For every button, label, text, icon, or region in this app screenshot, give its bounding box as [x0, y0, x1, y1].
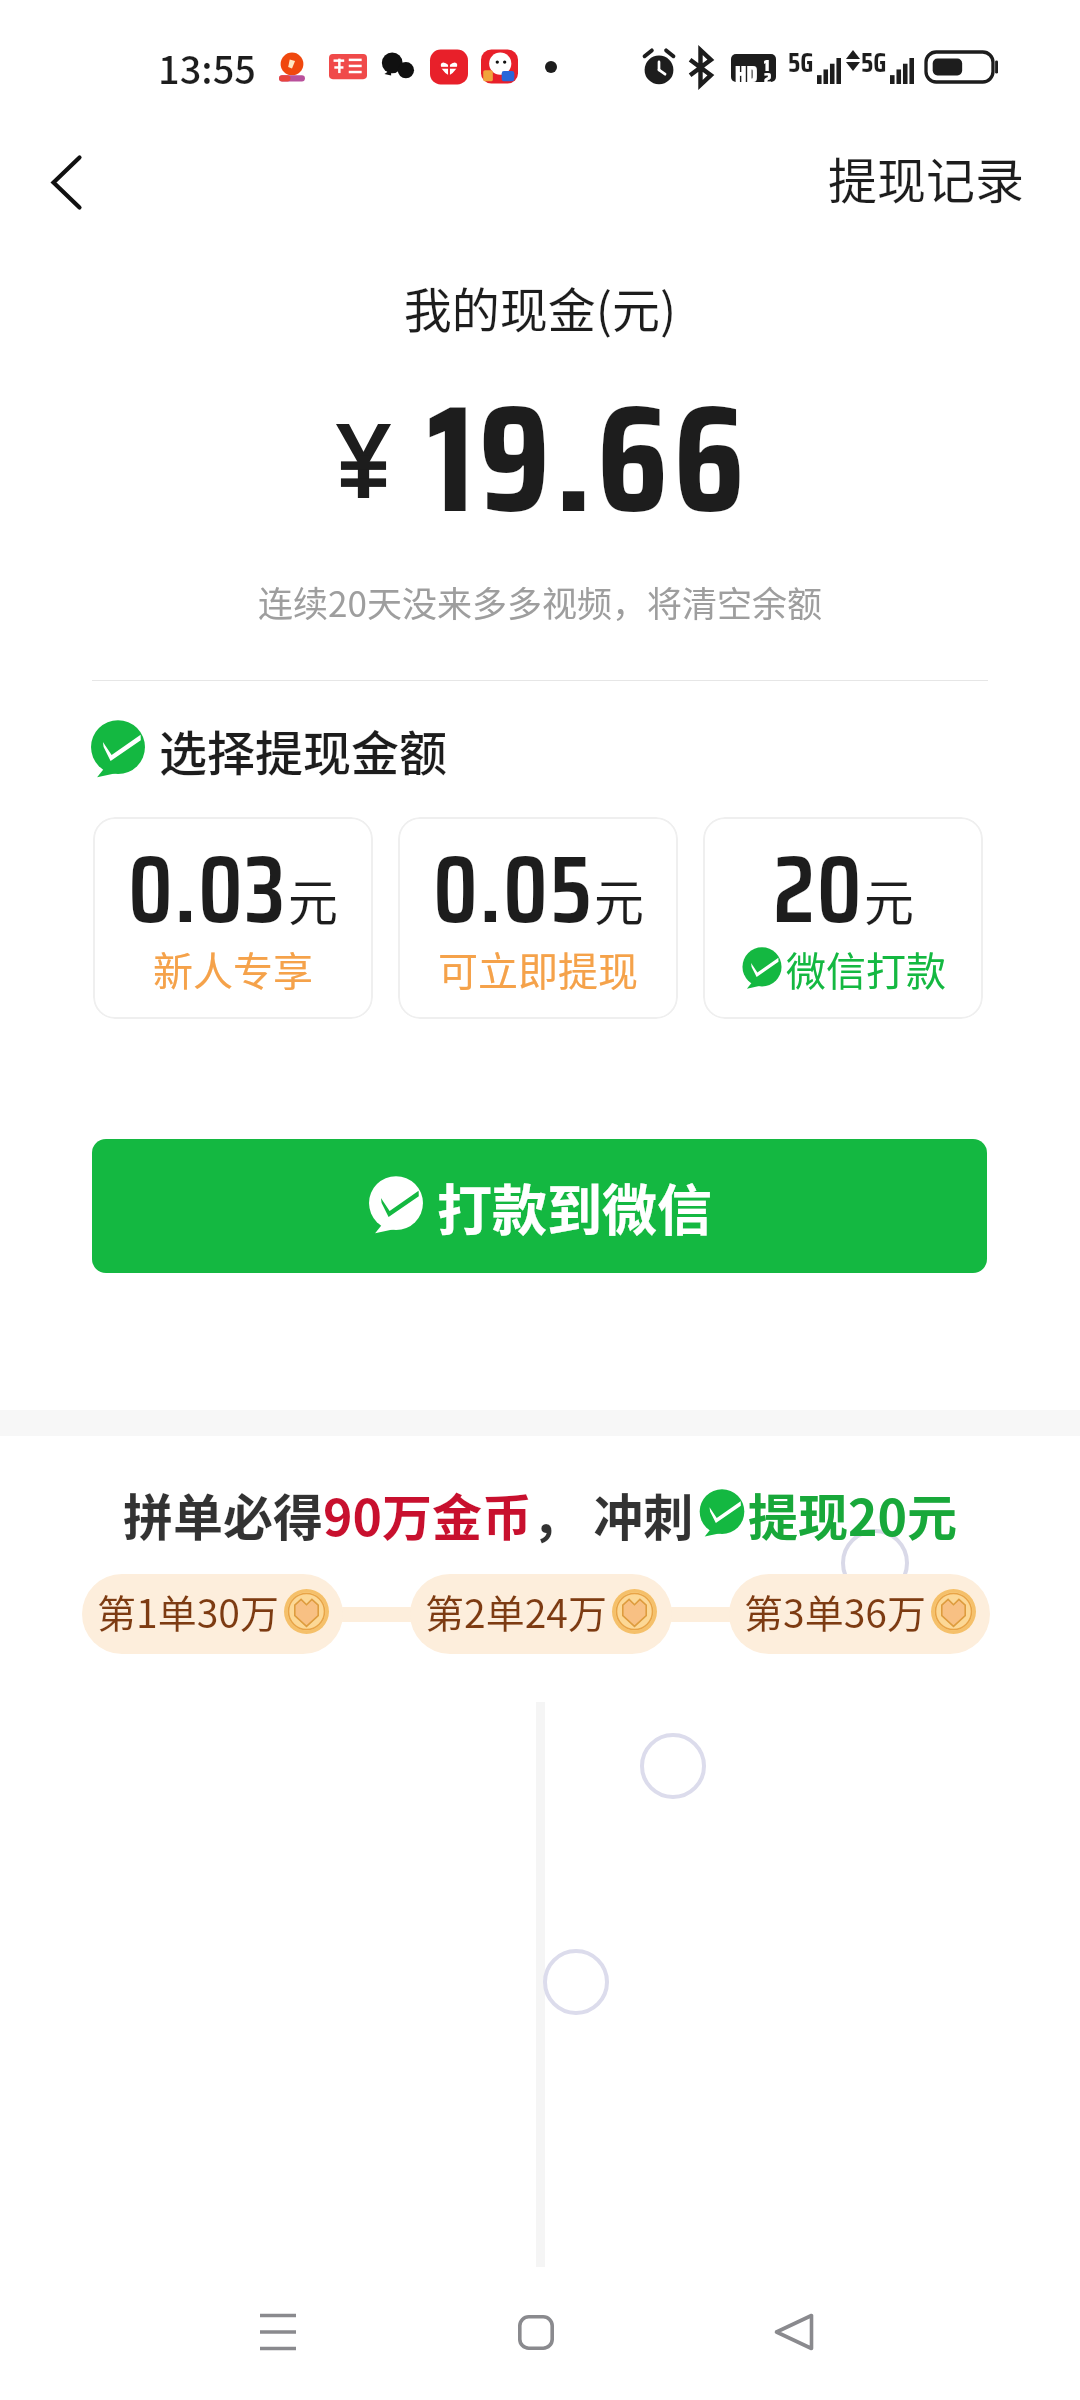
staticText: 我的现金(元): [0, 272, 1080, 342]
staticText: 元: [594, 863, 644, 935]
button[interactable]: Recents: [238, 2292, 318, 2372]
staticText: 元: [288, 863, 338, 935]
staticText: 拼单必得90万金币， 冲刺: [123, 1478, 694, 1550]
staticText: 第3单36万: [744, 1583, 926, 1639]
staticText: 微信打款: [786, 940, 946, 998]
button[interactable]: 第3单36万: [729, 1574, 990, 1654]
button[interactable]: 20: [703, 817, 983, 1019]
staticText: 可立即提现: [438, 940, 638, 998]
staticText: 提现20元: [748, 1478, 957, 1550]
staticText: HD: [735, 57, 758, 82]
staticText: 5G: [861, 41, 887, 83]
staticText: 连续20天没来多多视频，将清空余额: [0, 576, 1080, 627]
staticText: 0.05: [433, 817, 594, 963]
staticText: 1: [764, 54, 770, 78]
staticText: 打款到微信: [437, 1166, 713, 1246]
staticText: 元: [864, 863, 914, 935]
button[interactable]: Back: [26, 142, 106, 222]
staticText: 新人专享: [153, 940, 313, 998]
button[interactable]: Back: [754, 2292, 834, 2372]
button[interactable]: 第1单30万: [82, 1574, 343, 1654]
button[interactable]: Home: [496, 2292, 576, 2372]
staticText: 第2单24万: [425, 1583, 607, 1639]
staticText: 19.66: [427, 340, 750, 578]
staticText: 第1单30万: [97, 1583, 279, 1639]
staticText: 5G: [788, 41, 814, 83]
staticText: 2: [764, 66, 772, 82]
button[interactable]: 0.03: [93, 817, 373, 1019]
staticText: 20: [773, 817, 864, 963]
staticText: 提现记录: [828, 142, 1025, 213]
button[interactable]: 打款到微信: [92, 1139, 987, 1273]
staticText: 选择提现金额: [159, 715, 448, 785]
staticText: 0.03: [128, 817, 288, 963]
button[interactable]: 第2单24万: [410, 1574, 672, 1654]
staticText: 13:55: [158, 40, 256, 95]
button[interactable]: 0.05: [398, 817, 678, 1019]
